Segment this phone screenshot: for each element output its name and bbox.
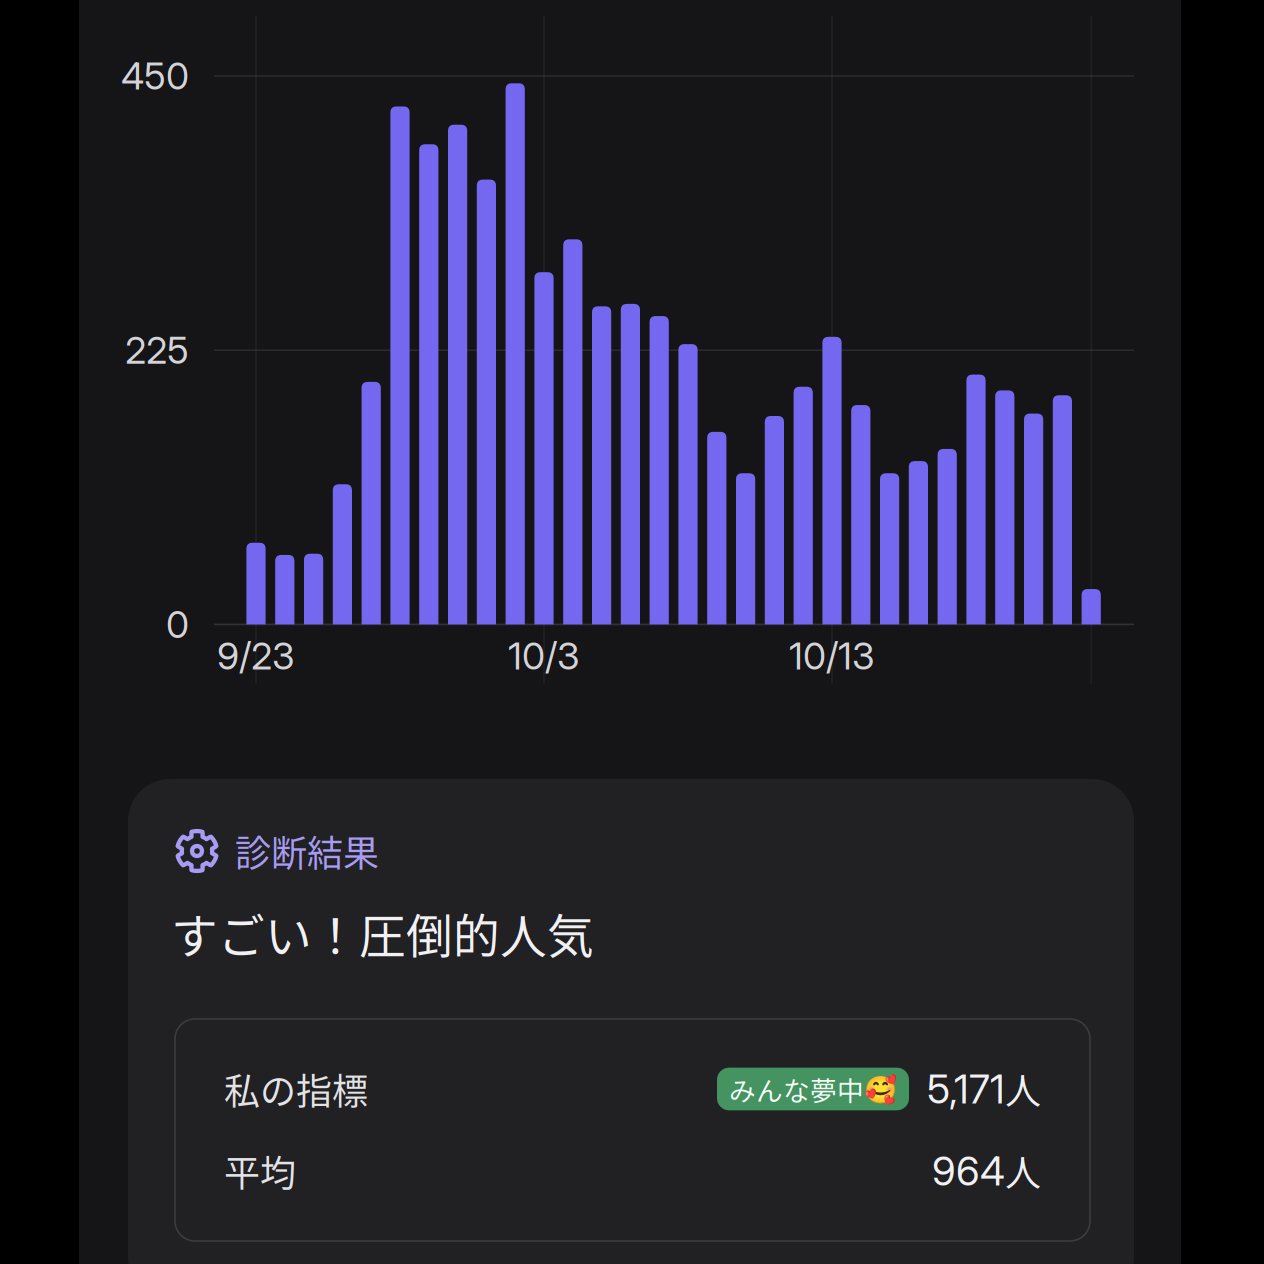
staticText: 0	[166, 602, 189, 647]
staticText: 平均	[224, 1145, 296, 1197]
staticText: 私の指標	[224, 1063, 368, 1115]
staticText: 964	[932, 1147, 1005, 1195]
staticText: 225	[125, 328, 189, 373]
staticText: 9/23	[217, 633, 295, 679]
staticText: 人	[1005, 1145, 1041, 1197]
staticText: 5,171	[927, 1065, 1005, 1113]
staticText: 10/3	[508, 633, 580, 679]
staticText: 診断結果	[235, 825, 379, 877]
staticText: すごい！圧倒的人気	[171, 899, 594, 967]
staticText: 10/13	[789, 633, 875, 679]
staticText: みんな夢中🥰	[729, 1070, 897, 1108]
staticText: 人	[1005, 1063, 1041, 1115]
staticText: 450	[121, 53, 189, 99]
button[interactable]: 診断結果	[128, 779, 1134, 1264]
